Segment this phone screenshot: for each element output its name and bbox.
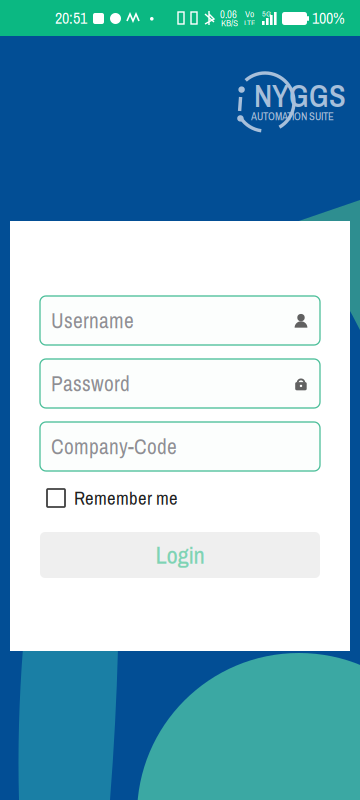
staticText: Vo (245, 8, 254, 20)
button[interactable]: Password (40, 359, 320, 408)
staticText: Remember me (74, 485, 178, 510)
button[interactable]: Remember me (47, 489, 327, 507)
staticText: KB/S (221, 17, 238, 29)
staticText: 5G (262, 8, 271, 19)
staticText: Company-Code (51, 432, 177, 461)
staticText: Login (155, 539, 204, 571)
staticText: 0.06 (220, 7, 237, 22)
staticText: Password (51, 369, 130, 398)
staticText: Username (51, 306, 134, 335)
staticText: NYGGS (254, 75, 346, 117)
staticText: 100% (312, 7, 345, 29)
staticText: AUTOMATION SUITE (251, 109, 334, 124)
button[interactable]: Login (40, 532, 320, 578)
button[interactable]: Company-Code (40, 422, 320, 471)
staticText: 20:51 (55, 7, 87, 29)
staticText: LTE (244, 17, 255, 28)
button[interactable]: Username (40, 296, 320, 345)
